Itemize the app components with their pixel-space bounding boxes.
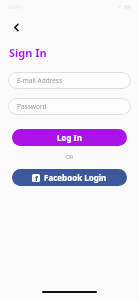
staticText: 12:47 [7, 3, 23, 11]
staticText: Password [17, 102, 47, 111]
staticText: Facebook Login [44, 172, 107, 183]
staticText: OR [0, 154, 139, 161]
staticText: Sign In [9, 45, 47, 60]
button[interactable]: Log In [12, 129, 127, 146]
staticText: f [35, 174, 38, 182]
staticText: E-mail Address [17, 76, 63, 85]
button[interactable]: f [12, 169, 127, 186]
button[interactable]: Password [8, 98, 131, 115]
button[interactable]: E-mail Address [8, 72, 131, 89]
button[interactable]: Back [4, 15, 28, 39]
staticText: Log In [57, 132, 82, 143]
